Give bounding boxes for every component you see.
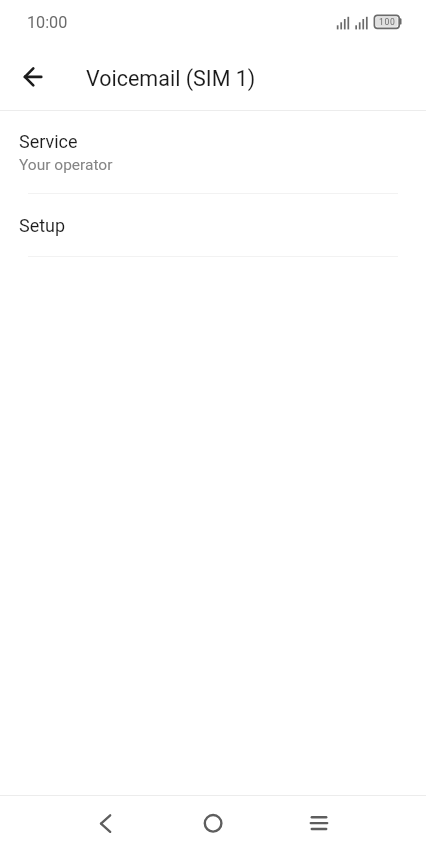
staticText: 100	[379, 17, 396, 27]
staticText: Setup	[19, 215, 66, 236]
button[interactable]: Service	[0, 111, 426, 193]
staticText: Voicemail (SIM 1)	[86, 66, 256, 91]
staticText: Service	[19, 131, 78, 152]
button[interactable]: Setup	[0, 194, 426, 256]
button[interactable]: Back	[9, 57, 50, 98]
button[interactable]: Recent apps	[295, 800, 343, 848]
button[interactable]: Back	[82, 800, 130, 848]
button[interactable]: Home	[189, 800, 237, 848]
staticText: Your operator	[19, 156, 113, 174]
staticText: 10:00	[27, 13, 68, 32]
